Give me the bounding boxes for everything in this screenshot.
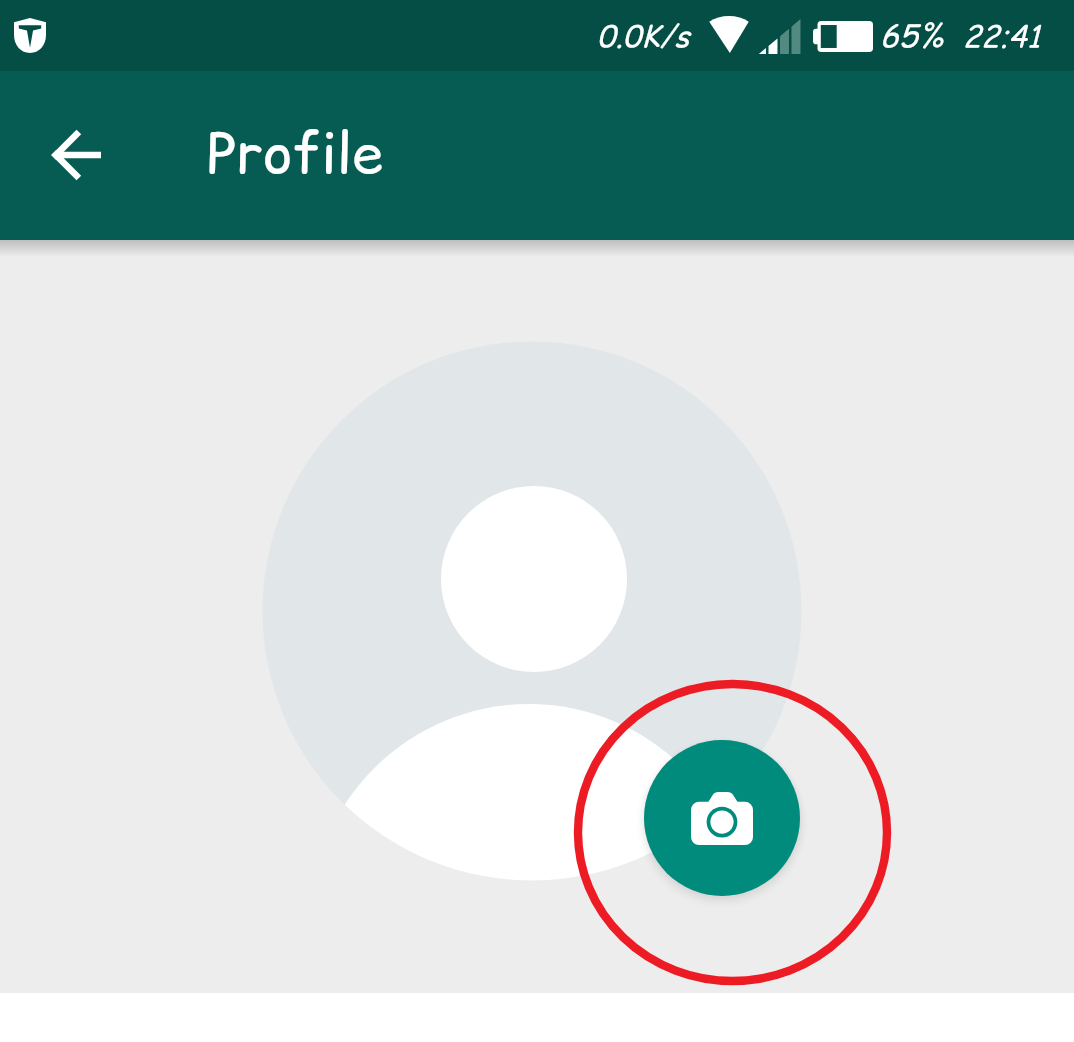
staticText: 65% xyxy=(880,14,944,57)
staticText: Profile xyxy=(207,114,383,192)
staticText: 0.0K/s xyxy=(597,15,690,57)
button[interactable]: Change profile photo xyxy=(644,740,800,896)
button[interactable]: Back xyxy=(29,107,125,203)
staticText: 22:41 xyxy=(963,15,1041,57)
